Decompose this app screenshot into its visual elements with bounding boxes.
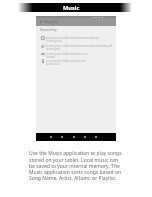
- staticText: Lorem ipsum dolor sit amet consectetur a…: [46, 36, 100, 40]
- staticText: Lorem ipsum dolor sit amet cons: [46, 59, 87, 63]
- staticText: Music: [63, 4, 80, 12]
- staticText: Use the Music application to play songs …: [29, 150, 125, 181]
- staticText: Lorem ipsu: [46, 62, 60, 66]
- staticText: Magnolia: [44, 20, 58, 24]
- staticText: Lorem ipsum: [46, 39, 63, 43]
- button[interactable]: Lorem ipsum dolor sit amet conse: [36, 52, 116, 60]
- staticText: Lorem ipsum dolor sit amet consectetur a…: [46, 44, 113, 48]
- button[interactable]: Lorem ipsum dolor sit amet consectetur a…: [36, 44, 116, 52]
- button[interactable]: Lorem ipsum dolor sit amet cons: [36, 59, 116, 67]
- button[interactable]: Lorem ipsum dolor sit amet consectetur a…: [36, 36, 116, 44]
- staticText: Wanna Pay: [40, 28, 57, 32]
- staticText: Lorem ipsum dolor sit amet conse: [46, 52, 88, 56]
- staticText: Lorem i: [46, 55, 56, 59]
- button[interactable]: Navigate up: [40, 20, 58, 24]
- staticText: Lorem ipsu: [46, 47, 60, 51]
